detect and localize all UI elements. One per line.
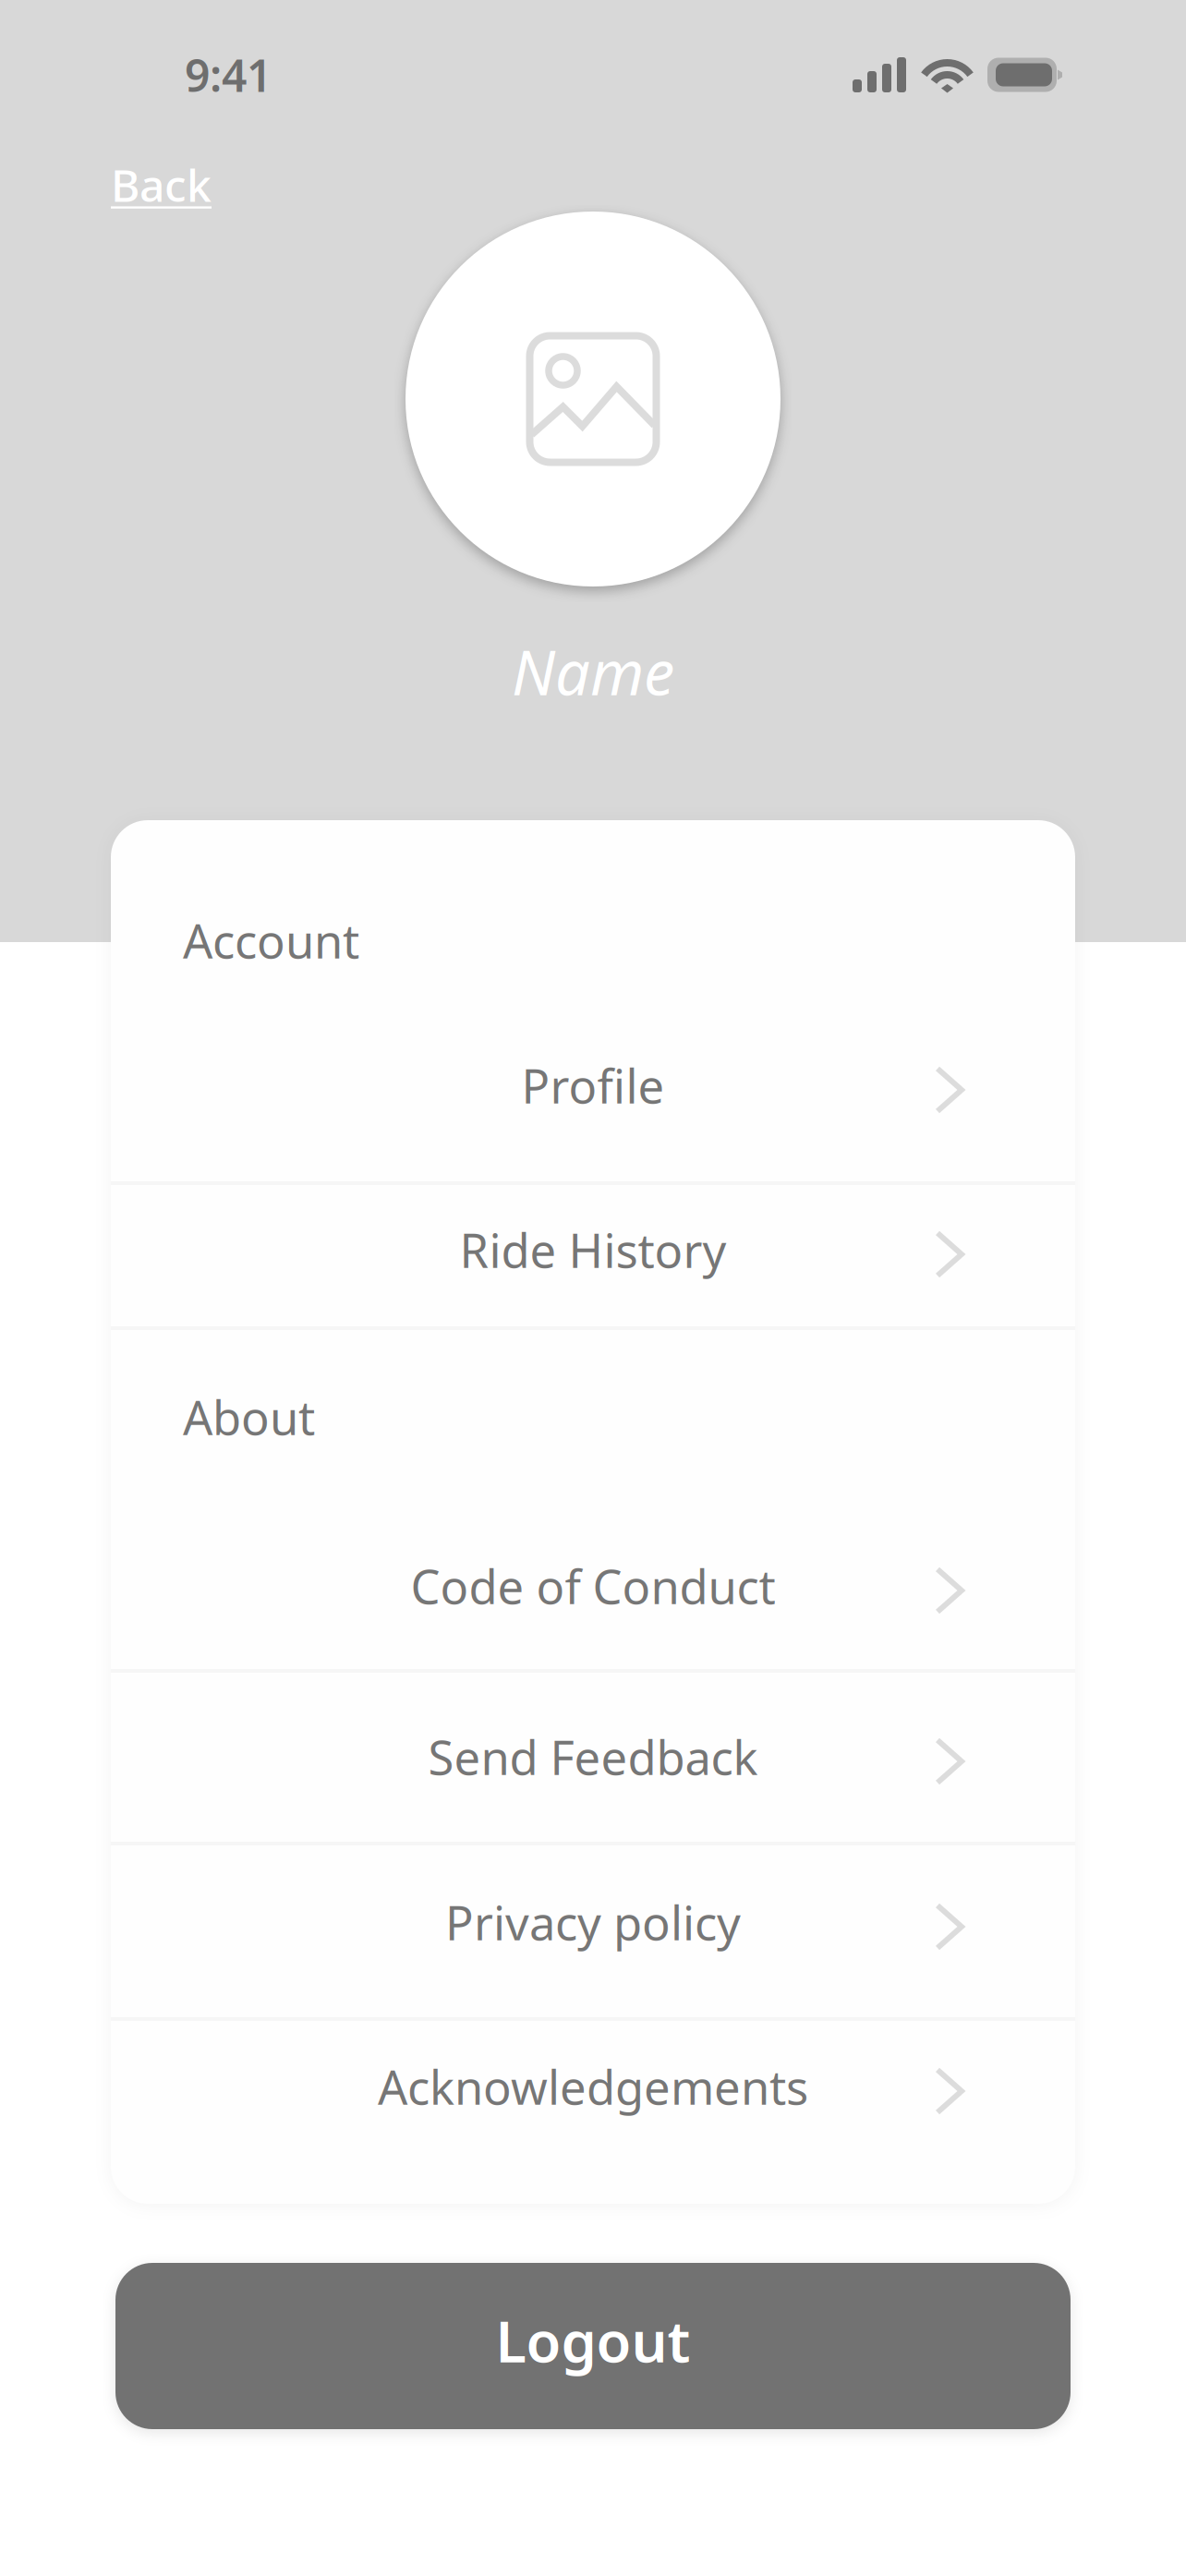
button[interactable]: Acknowledgements xyxy=(111,2019,1075,2204)
staticText: Logout xyxy=(496,2303,690,2378)
button[interactable]: Profile xyxy=(111,1007,1075,1183)
staticText: Ride History xyxy=(460,1219,726,1281)
staticText: 9:41 xyxy=(185,45,272,104)
button[interactable]: Back xyxy=(111,150,231,220)
button[interactable]: Ride History xyxy=(111,1183,1075,1328)
staticText: Account xyxy=(183,909,359,971)
button[interactable]: Privacy policy xyxy=(111,1844,1075,2019)
staticText: Profile xyxy=(521,1054,665,1116)
staticText: About xyxy=(183,1386,315,1448)
staticText: Privacy policy xyxy=(445,1891,741,1953)
button[interactable]: Logout xyxy=(115,2263,1071,2429)
staticText: Code of Conduct xyxy=(411,1555,775,1617)
staticText: Send Feedback xyxy=(428,1726,758,1788)
staticText: Name xyxy=(512,631,674,712)
button[interactable]: Code of Conduct xyxy=(111,1487,1075,1671)
button[interactable]: Send Feedback xyxy=(111,1671,1075,1844)
staticText: Back xyxy=(111,155,212,214)
staticText: Acknowledgements xyxy=(378,2055,808,2118)
